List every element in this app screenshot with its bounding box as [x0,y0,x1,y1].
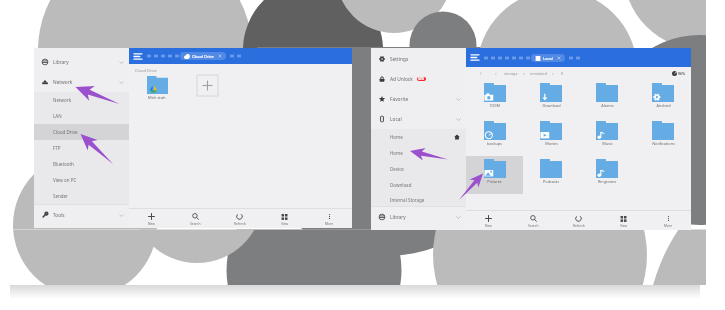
button[interactable]: Internal Storage [371,193,466,206]
staticText: Local [390,116,402,123]
staticText: Search [528,223,539,227]
button[interactable]: Add cloud drive [197,75,218,96]
staticText: Home [390,150,403,156]
button[interactable]: Library [371,207,466,227]
staticText: Android [656,103,671,108]
staticText: Tools [53,212,65,219]
staticText: Meh stah [148,95,166,100]
button[interactable]: Sender [34,188,129,204]
staticText: Local [543,56,553,61]
button[interactable]: Refresh [556,211,601,230]
button[interactable]: Library [34,52,129,72]
button[interactable]: Network [34,92,129,108]
staticText: Alarms [601,103,614,108]
button[interactable]: Music [579,118,635,156]
button[interactable]: Alarms [579,80,635,118]
staticText: Library [53,59,69,66]
staticText: Sender [53,193,68,199]
button[interactable]: Ad Unlock [371,69,466,89]
button[interactable]: Android [635,80,691,118]
staticText: Cloud Drive [192,54,214,59]
button[interactable]: Cloud Drive [180,52,226,60]
button[interactable]: Movies [523,118,579,156]
staticText: Network [53,97,72,103]
button[interactable]: More [646,211,691,230]
staticText: More [325,221,334,225]
staticText: Refresh [234,221,246,225]
button[interactable]: Network [34,72,129,92]
staticText: 0 [561,71,564,76]
staticText: > [495,72,497,76]
staticText: New [485,223,492,227]
button[interactable]: Download [371,177,466,193]
staticText: FTP [53,145,61,151]
staticText: storage [504,71,518,76]
button[interactable]: Home [371,145,466,161]
staticText: Device [390,166,404,172]
staticText: Movies [545,141,558,146]
button[interactable]: DCIM [466,80,523,118]
button[interactable]: Podcasts [523,156,579,194]
staticText: DCIM [490,103,500,108]
button[interactable]: Refresh [217,209,262,228]
staticText: Favorite [390,96,409,103]
button[interactable]: Menu [134,53,142,60]
staticText: / [480,71,482,76]
button[interactable]: Tools [34,205,129,225]
button[interactable]: Download [523,80,579,118]
button[interactable]: Local [531,54,565,62]
button[interactable]: New [466,211,511,230]
staticText: Pictures [487,179,502,184]
button[interactable]: LAN [34,108,129,124]
button[interactable]: Meh stah [142,76,172,100]
button[interactable]: FTP [34,140,129,156]
button[interactable]: Settings [371,49,466,69]
staticText: View on PC [53,177,77,183]
button[interactable]: Ringtones [579,156,635,194]
button[interactable]: Pictures [466,156,523,194]
staticText: Settings [390,56,409,63]
button[interactable]: Search [511,211,556,230]
staticText: View [620,223,628,227]
staticText: 96% [678,71,685,76]
staticText: Download [390,182,412,188]
button[interactable]: Cloud Drive [34,124,129,140]
staticText: Ringtones [598,179,616,184]
staticText: > [523,72,525,76]
staticText: View [281,221,289,225]
button[interactable]: Device [371,161,466,177]
button[interactable]: More [307,209,352,228]
staticText: > [552,72,554,76]
staticText: Ad Unlock [390,76,413,83]
button[interactable]: backups [466,118,523,156]
staticText: LAN [53,113,62,119]
button[interactable]: Notifications [635,118,691,156]
staticText: Refresh [573,223,585,227]
button[interactable]: Home [371,129,466,145]
button[interactable]: Search [173,209,217,228]
button[interactable]: Local [371,109,466,129]
staticText: Network [53,79,73,86]
staticText: Podcasts [543,179,559,184]
staticText: backups [487,141,502,146]
button[interactable]: Favorite [371,89,466,109]
staticText: NEW [418,77,425,81]
staticText: More [664,223,673,227]
button[interactable]: Menu [471,54,479,61]
button[interactable]: View on PC [34,172,129,188]
staticText: emulated [530,71,547,76]
staticText: Notifications [652,141,675,146]
button[interactable]: View [262,209,307,228]
button[interactable]: View [601,211,646,230]
staticText: Bluetooth [53,161,74,167]
staticText: Home [390,134,403,140]
staticText: Cloud Drive [53,129,78,135]
staticText: Download [542,103,561,108]
staticText: Library [390,214,406,221]
staticText: New [148,221,155,225]
staticText: Cloud Drive [135,68,157,73]
button[interactable]: Bluetooth [34,156,129,172]
staticText: Search [190,221,201,225]
button[interactable]: New [129,209,173,228]
staticText: Internal Storage [390,197,425,203]
